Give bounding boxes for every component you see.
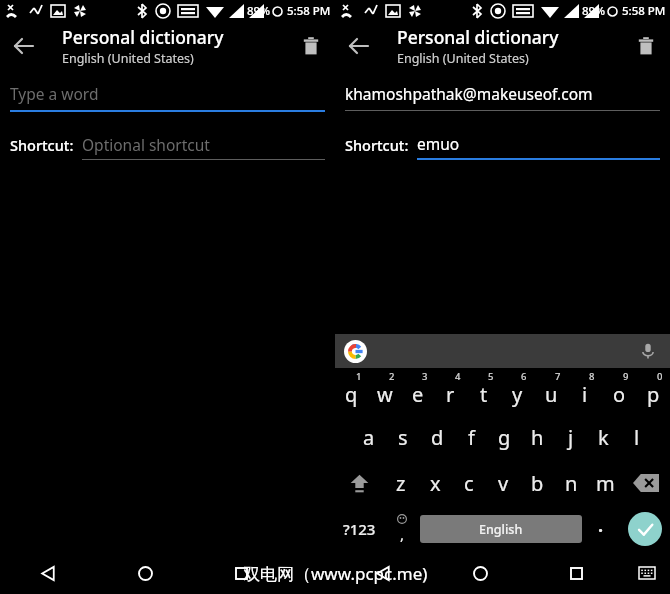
staticText: g: [498, 424, 511, 451]
staticText: ,: [400, 524, 405, 544]
staticText: 双电网（www.pcpc.me): [243, 562, 428, 585]
staticText: a: [363, 424, 375, 451]
staticText: k: [598, 424, 609, 451]
button[interactable]: 1: [335, 368, 368, 414]
staticText: 8: [589, 370, 595, 383]
button[interactable]: 4: [434, 368, 467, 414]
button[interactable]: f: [454, 414, 488, 460]
staticText: 89%: [247, 3, 270, 19]
staticText: 0: [657, 370, 663, 383]
staticText: b: [531, 470, 544, 497]
button[interactable]: .: [582, 506, 619, 552]
button[interactable]: Back: [0, 552, 97, 594]
button[interactable]: Home: [97, 552, 193, 594]
staticText: r: [446, 381, 455, 408]
staticText: emuo: [417, 133, 460, 154]
staticText: Personal dictionary: [62, 25, 224, 49]
staticText: 89%: [582, 3, 605, 19]
button[interactable]: Shift: [335, 460, 384, 506]
button[interactable]: 0: [636, 368, 670, 414]
staticText: 3: [422, 370, 428, 383]
staticText: x: [430, 470, 441, 497]
button[interactable]: 6: [500, 368, 534, 414]
staticText: c: [464, 470, 474, 497]
button[interactable]: ?123: [335, 506, 383, 552]
staticText: n: [565, 470, 578, 497]
button[interactable]: 7: [534, 368, 568, 414]
button[interactable]: Emoji and comma: [383, 506, 420, 552]
button[interactable]: Backspace: [622, 460, 670, 506]
staticText: Type a word: [10, 83, 99, 104]
button[interactable]: Google: [344, 340, 367, 363]
button[interactable]: Voice input: [636, 339, 660, 363]
button[interactable]: Back: [335, 552, 432, 594]
staticText: y: [512, 381, 523, 408]
button[interactable]: Google: [335, 334, 670, 368]
button[interactable]: Type a word: [10, 78, 325, 112]
button[interactable]: Back: [335, 22, 383, 70]
button[interactable]: Shortcut:: [345, 130, 660, 160]
staticText: 6: [521, 370, 527, 383]
staticText: w: [377, 381, 393, 408]
staticText: Personal dictionary: [397, 25, 559, 49]
staticText: h: [531, 424, 544, 451]
staticText: 9: [623, 370, 629, 383]
button[interactable]: Recents: [193, 552, 289, 594]
button[interactable]: Shortcut:: [10, 131, 325, 160]
button[interactable]: Delete: [622, 22, 670, 70]
staticText: v: [498, 470, 509, 497]
staticText: 5:58 PM: [622, 3, 666, 19]
button[interactable]: Enter: [619, 506, 670, 552]
button[interactable]: s: [386, 414, 420, 460]
button[interactable]: khamoshpathak@makeuseof.com: [345, 78, 660, 111]
button[interactable]: x: [418, 460, 452, 506]
button[interactable]: 9: [602, 368, 636, 414]
staticText: m: [596, 470, 615, 497]
button[interactable]: Home: [432, 552, 528, 594]
staticText: 5: [488, 370, 494, 383]
button[interactable]: l: [620, 414, 653, 460]
staticText: English (United States): [62, 50, 194, 67]
button[interactable]: n: [554, 460, 588, 506]
staticText: i: [582, 381, 588, 408]
staticText: l: [634, 424, 640, 451]
button[interactable]: 3: [401, 368, 434, 414]
staticText: e: [412, 381, 424, 408]
staticText: .: [598, 513, 604, 538]
button[interactable]: b: [520, 460, 554, 506]
staticText: 7: [555, 370, 561, 383]
staticText: Optional shortcut: [82, 134, 210, 155]
button[interactable]: 5: [467, 368, 500, 414]
button[interactable]: a: [352, 414, 386, 460]
button[interactable]: z: [384, 460, 418, 506]
button[interactable]: Back: [0, 22, 48, 70]
staticText: j: [568, 424, 574, 451]
button[interactable]: g: [488, 414, 521, 460]
staticText: s: [398, 424, 408, 451]
staticText: u: [545, 381, 558, 408]
staticText: p: [647, 381, 660, 408]
button[interactable]: c: [452, 460, 486, 506]
button[interactable]: Switch keyboard: [624, 552, 670, 594]
staticText: English (United States): [397, 50, 529, 67]
button[interactable]: h: [521, 414, 554, 460]
button[interactable]: Recents: [528, 552, 624, 594]
button[interactable]: 2: [368, 368, 401, 414]
staticText: 5:58 PM: [287, 3, 331, 19]
staticText: z: [396, 470, 406, 497]
staticText: 2: [389, 370, 395, 383]
staticText: f: [468, 424, 475, 451]
button[interactable]: v: [486, 460, 520, 506]
button[interactable]: m: [588, 460, 622, 506]
button[interactable]: 8: [568, 368, 602, 414]
button[interactable]: d: [420, 414, 454, 460]
button[interactable]: j: [554, 414, 587, 460]
button[interactable]: Delete: [287, 22, 335, 70]
staticText: 4: [455, 370, 461, 383]
button[interactable]: k: [587, 414, 620, 460]
staticText: 1: [356, 370, 362, 383]
staticText: khamoshpathak@makeuseof.com: [345, 83, 593, 104]
staticText: t: [480, 381, 488, 408]
staticText: ?123: [343, 519, 376, 539]
button[interactable]: English: [420, 515, 582, 543]
